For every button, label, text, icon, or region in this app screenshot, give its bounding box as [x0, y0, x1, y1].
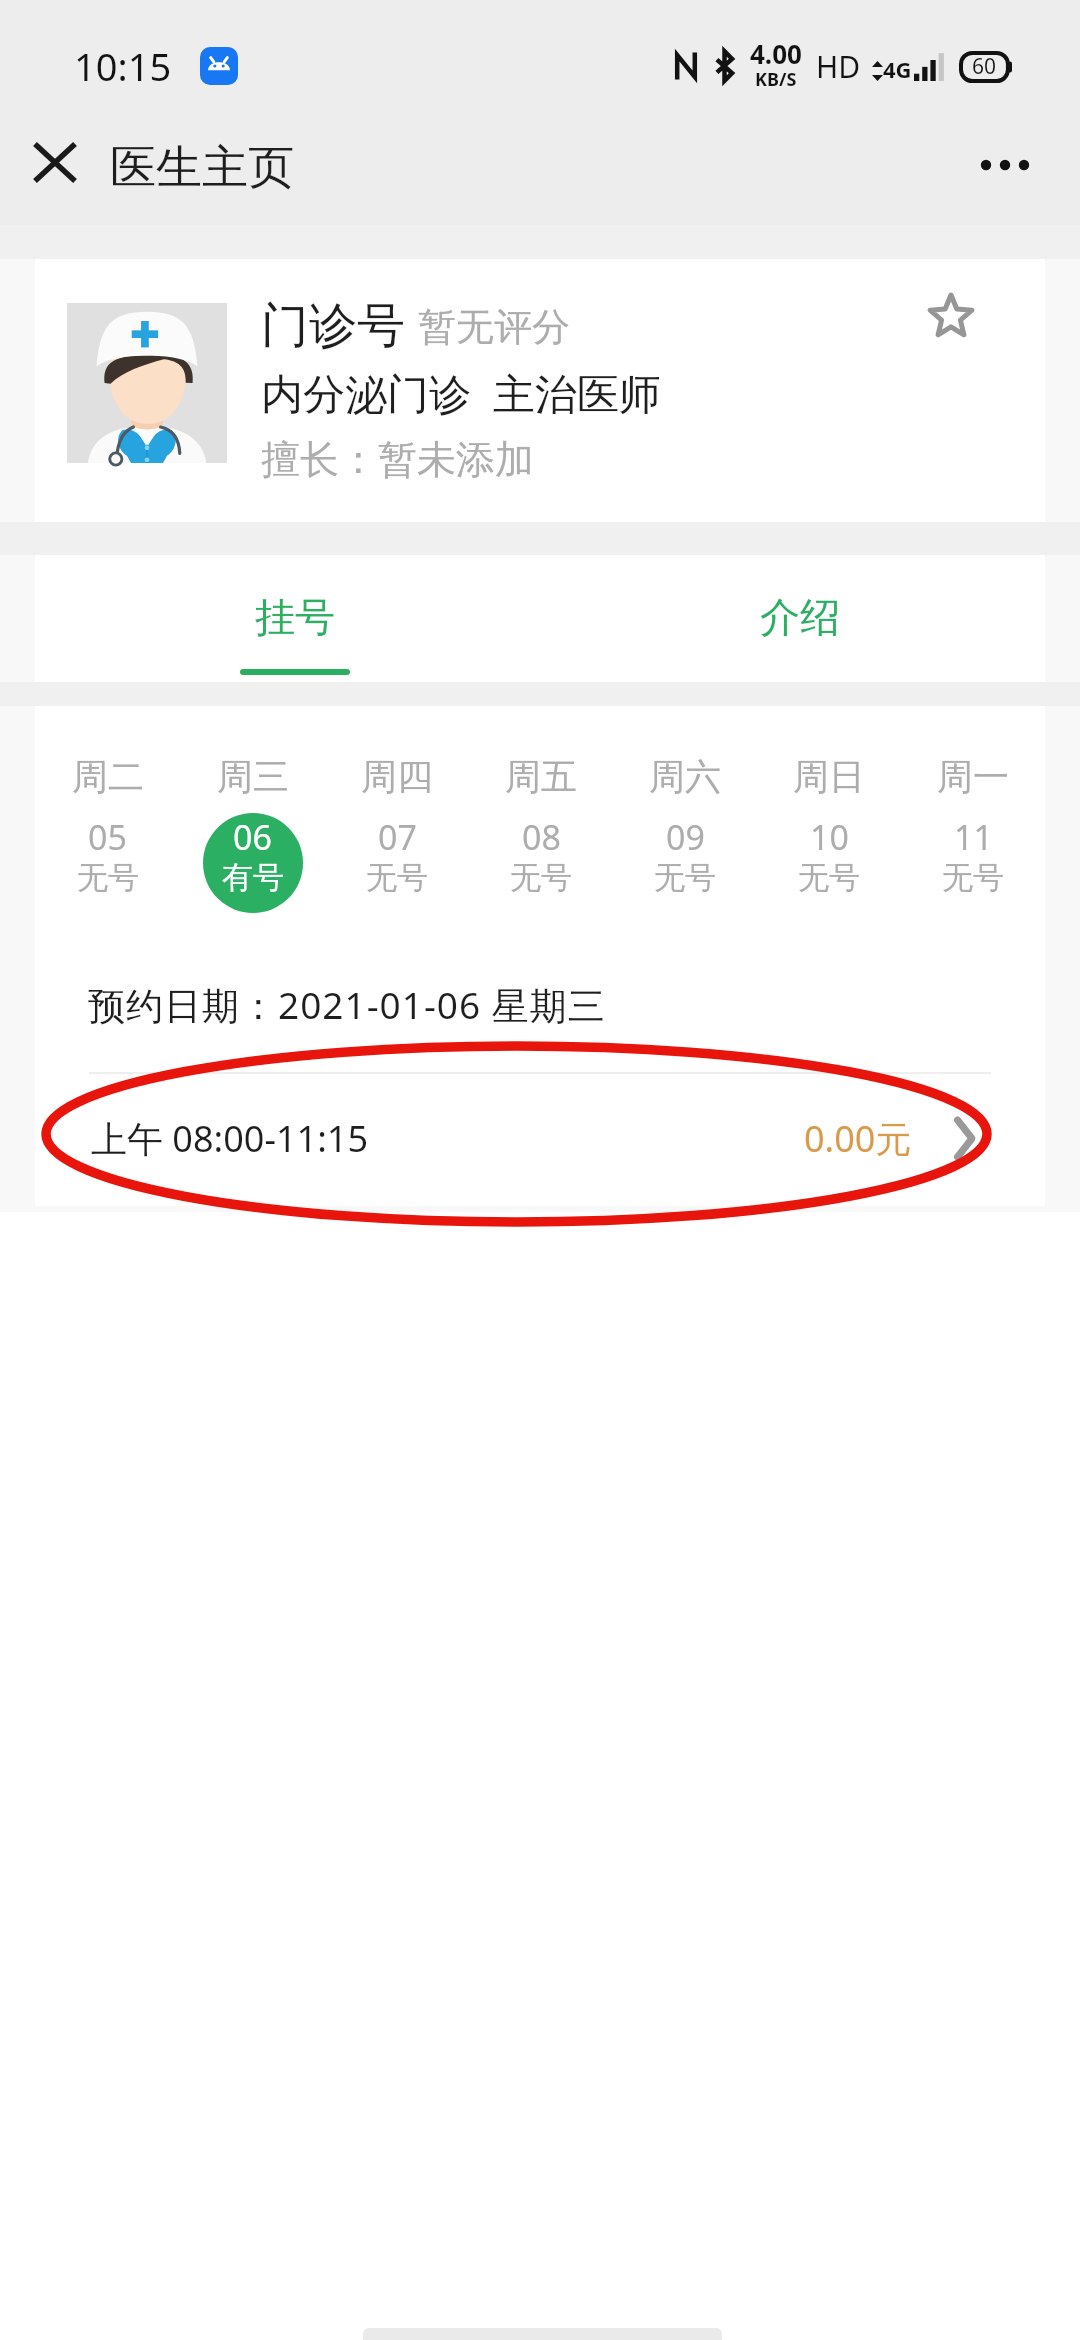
staticText: 周一 [937, 754, 1009, 799]
staticText: 0.00元 [804, 1114, 912, 1163]
staticText: 无号 [77, 858, 139, 897]
staticText: 周五 [505, 754, 577, 799]
staticText: 周四 [361, 754, 433, 799]
button[interactable]: 周六 [613, 706, 757, 916]
staticText: 09 [666, 814, 705, 860]
staticText: 4G [883, 54, 912, 84]
staticText: 周日 [793, 754, 865, 799]
staticText: 无号 [366, 858, 428, 897]
button[interactable]: 周日 [757, 706, 901, 916]
staticText: 05 [88, 814, 127, 860]
staticText: 周六 [649, 754, 721, 799]
button[interactable]: 上午 08:00-11:15 [35, 1085, 1045, 1191]
staticText: 门诊号 [261, 296, 405, 356]
staticText: 10 [810, 814, 849, 860]
staticText: 周二 [72, 754, 144, 799]
button[interactable]: Favorite [917, 281, 985, 349]
button[interactable]: 介绍 [547, 555, 1052, 682]
button[interactable]: More options [963, 126, 1047, 210]
staticText: 06 [233, 814, 272, 860]
staticText: 预约日期：2021-01-06 星期三 [88, 979, 606, 1030]
staticText: 60 [972, 52, 997, 81]
button[interactable]: 周一 [901, 706, 1045, 916]
button[interactable]: 周三 [180, 706, 325, 916]
button[interactable]: 挂号 [42, 555, 547, 682]
staticText: 无号 [654, 858, 716, 897]
staticText: 介绍 [760, 592, 840, 642]
staticText: 4.00 [750, 36, 802, 71]
staticText: 上午 08:00-11:15 [91, 1114, 368, 1163]
staticText: 11 [954, 814, 993, 860]
staticText: 医生主页 [110, 139, 294, 197]
staticText: 10:15 [74, 40, 172, 92]
button[interactable]: 周五 [469, 706, 613, 916]
staticText: 无号 [510, 858, 572, 897]
staticText: 有号 [222, 858, 284, 897]
staticText: 07 [378, 814, 417, 860]
staticText: 08 [522, 814, 561, 860]
staticText: 暂无评分 [418, 303, 570, 351]
staticText: 擅长：暂未添加 [261, 435, 534, 484]
button[interactable]: Close [19, 126, 91, 198]
button[interactable]: 周二 [35, 706, 180, 916]
staticText: HD [816, 46, 861, 87]
button[interactable]: 周四 [325, 706, 469, 916]
staticText: 内分泌门诊 主治医师 [261, 364, 661, 421]
staticText: 周三 [217, 754, 289, 799]
staticText: 无号 [942, 858, 1004, 897]
staticText: 挂号 [255, 592, 335, 642]
staticText: KB/S [755, 67, 797, 92]
staticText: 无号 [798, 858, 860, 897]
